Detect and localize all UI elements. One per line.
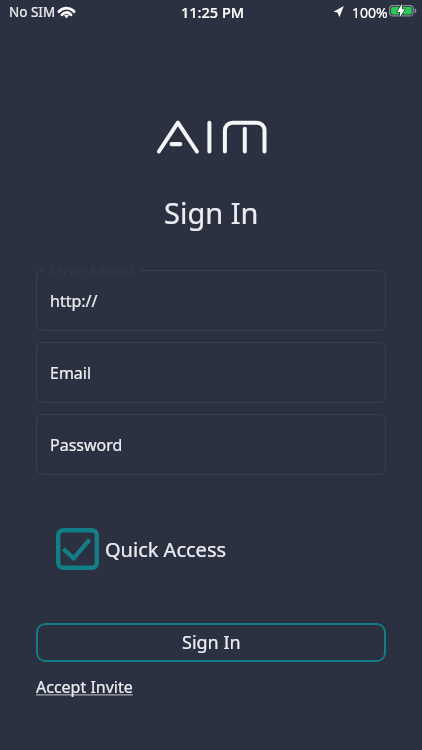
- staticText: 11:25 PM: [181, 2, 245, 22]
- button[interactable]: Email: [36, 342, 386, 403]
- button[interactable]: Sign In: [36, 623, 386, 662]
- other: AIM logo: [157, 120, 269, 156]
- staticText: 100%: [352, 3, 388, 22]
- staticText: http://: [50, 290, 98, 312]
- staticText: Password: [50, 434, 123, 456]
- staticText: Sign In: [164, 193, 259, 232]
- staticText: No SIM: [9, 3, 56, 21]
- staticText: Accept Invite: [36, 676, 133, 698]
- staticText: Email: [50, 362, 92, 384]
- button[interactable]: Password: [36, 414, 386, 475]
- button[interactable]: Quick Access: [56, 528, 227, 570]
- staticText: Quick Access: [105, 536, 227, 563]
- staticText: Sign In: [182, 630, 241, 655]
- button[interactable]: Accept Invite: [36, 676, 133, 698]
- button[interactable]: http://: [36, 270, 386, 331]
